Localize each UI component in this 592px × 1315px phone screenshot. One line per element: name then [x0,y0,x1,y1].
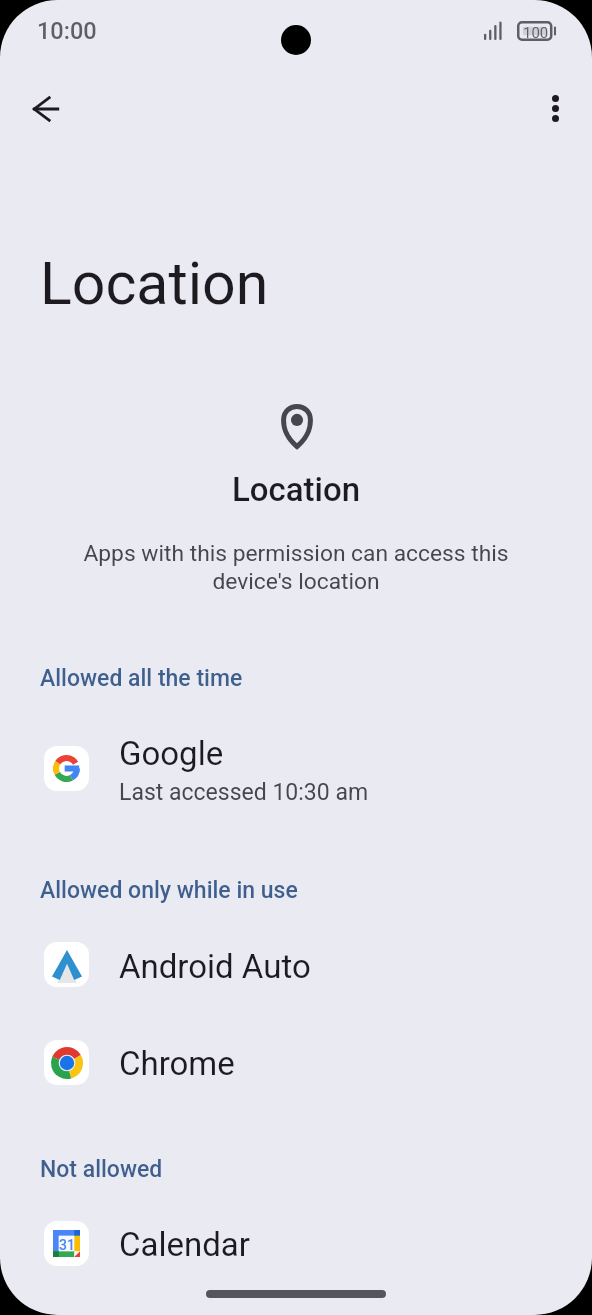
button[interactable]: More options [525,78,586,139]
staticText: Allowed only while in use [40,877,298,904]
staticText: 100 [523,24,549,42]
staticText: Google [119,734,224,773]
button[interactable] [0,928,592,1001]
staticText: Chrome [119,1044,235,1083]
staticText: Last accessed 10:30 am [119,779,369,806]
button[interactable]: Allowed all the time [0,655,592,701]
staticText: Apps with this permission can access thi… [70,540,522,594]
staticText: Location [40,249,269,318]
button[interactable]: Back [16,78,77,139]
staticText: 31 [59,1237,75,1253]
staticText: Not allowed [40,1156,163,1183]
staticText: Location [232,470,361,509]
staticText: Android Auto [119,947,311,986]
button[interactable] [0,1207,592,1280]
button[interactable] [0,1026,592,1099]
staticText: Allowed all the time [40,665,243,692]
button[interactable]: Not allowed [0,1146,592,1192]
button[interactable] [0,732,592,822]
staticText: 10:00 [37,17,97,45]
staticText: Calendar [119,1225,250,1264]
button[interactable]: Allowed only while in use [0,867,592,913]
